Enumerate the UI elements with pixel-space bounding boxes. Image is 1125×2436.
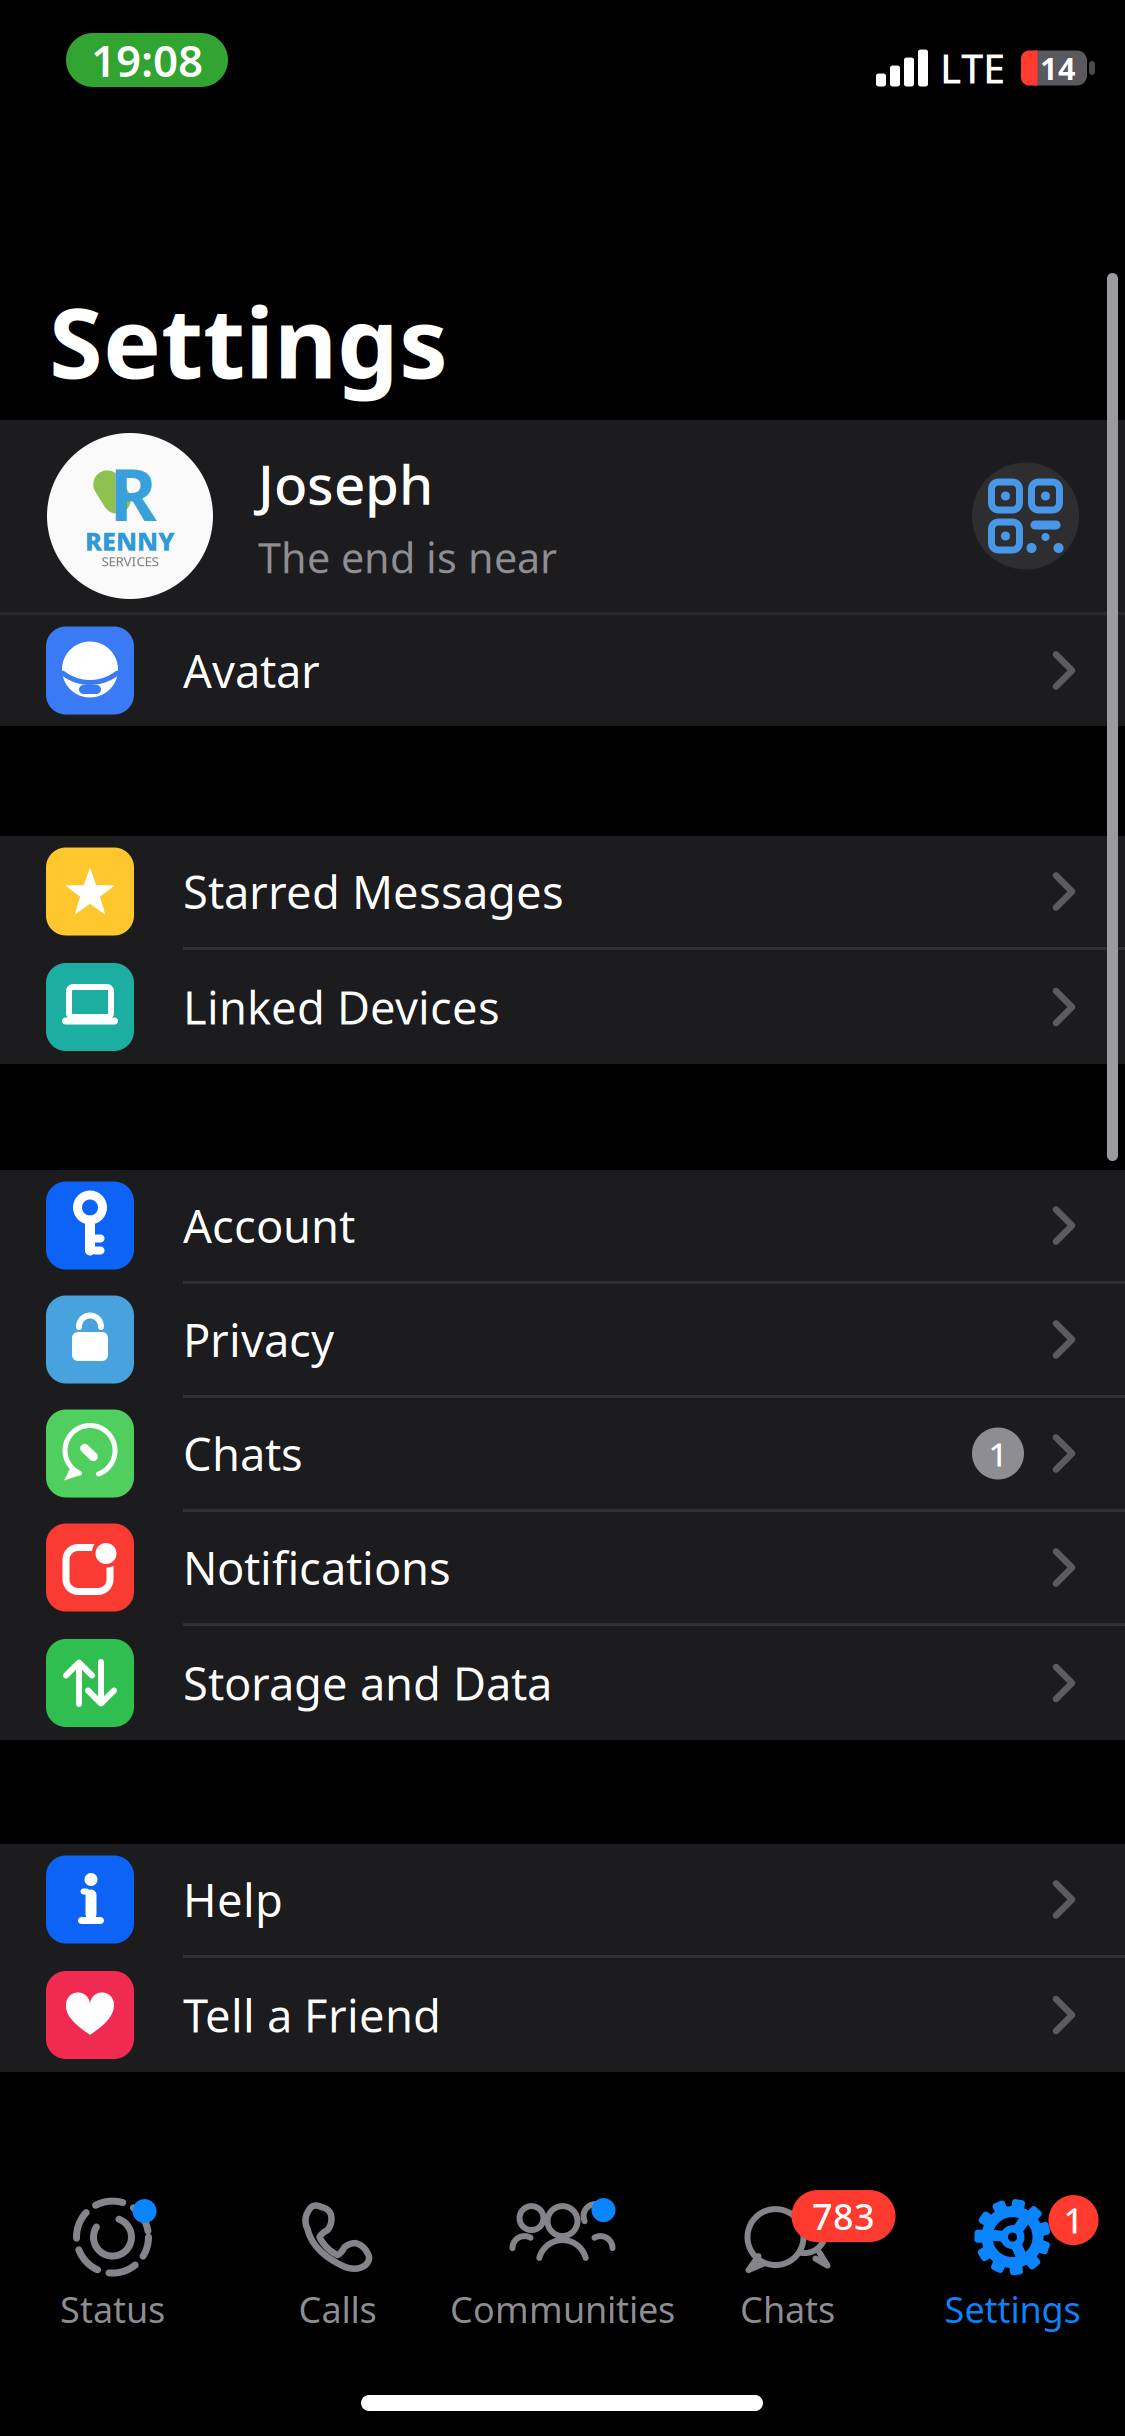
button[interactable]: Communities xyxy=(450,2194,675,2334)
button[interactable]: Linked Devices xyxy=(0,950,1125,1064)
staticText: 1 xyxy=(1063,2197,1083,2243)
button[interactable]: Storage and Data xyxy=(0,1626,1125,1740)
button[interactable]: Notifications xyxy=(0,1512,1125,1623)
staticText: Chats xyxy=(740,2285,835,2333)
button[interactable]: Chats xyxy=(0,1398,1125,1509)
staticText: RENNY xyxy=(85,524,175,558)
button[interactable]: Tell a Friend xyxy=(0,1958,1125,2072)
button[interactable]: Account xyxy=(0,1170,1125,1281)
staticText: Calls xyxy=(298,2285,376,2333)
staticText: 19:08 xyxy=(91,31,203,89)
staticText: Notifications xyxy=(183,1537,451,1598)
button[interactable]: Starred Messages xyxy=(0,836,1125,947)
button[interactable]: Avatar xyxy=(0,615,1125,726)
staticText: Avatar xyxy=(183,640,320,701)
button[interactable]: Calls xyxy=(225,2194,450,2334)
button[interactable]: 783 xyxy=(675,2194,900,2334)
staticText: SERVICES xyxy=(101,552,158,570)
staticText: Help xyxy=(183,1869,283,1930)
staticText: Tell a Friend xyxy=(183,1985,441,2045)
staticText: Account xyxy=(183,1195,355,1256)
staticText: 783 xyxy=(812,2192,875,2240)
button[interactable]: R xyxy=(0,420,1125,612)
staticText: Settings xyxy=(944,2285,1080,2333)
button[interactable]: QR code xyxy=(972,462,1079,569)
staticText: Settings xyxy=(49,276,448,405)
staticText: LTE xyxy=(940,41,1005,94)
staticText: Storage and Data xyxy=(183,1653,552,1713)
staticText: Chats xyxy=(183,1423,303,1484)
staticText: Joseph xyxy=(258,447,433,520)
staticText: Linked Devices xyxy=(183,977,500,1037)
staticText: R xyxy=(109,445,156,541)
staticText: Privacy xyxy=(183,1309,334,1370)
staticText: 1 xyxy=(988,1431,1007,1476)
staticText: Starred Messages xyxy=(183,861,564,922)
button[interactable]: Help xyxy=(0,1844,1125,1955)
staticText: Status xyxy=(60,2285,165,2333)
button[interactable]: Privacy xyxy=(0,1284,1125,1395)
staticText: The end is near xyxy=(258,530,557,585)
button[interactable]: Status xyxy=(0,2194,225,2334)
staticText: 14 xyxy=(1040,48,1076,88)
button[interactable]: 1 xyxy=(900,2194,1125,2334)
staticText: Communities xyxy=(450,2285,675,2333)
